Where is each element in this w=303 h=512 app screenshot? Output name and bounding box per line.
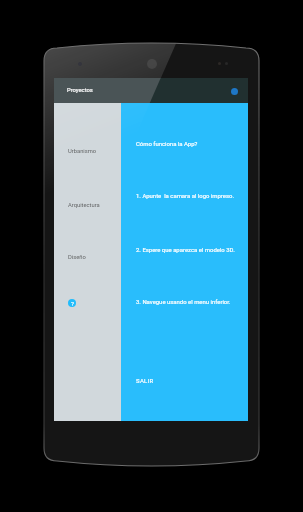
staticText: Proyectos	[67, 87, 93, 94]
staticText: Arquitectura	[68, 202, 100, 209]
staticText: 1. Apunte la camara al logo impreso.	[136, 192, 234, 199]
staticText: Cómo funciona la App?	[136, 140, 198, 147]
staticText: 3. Navegue usando el menu inferior.	[136, 298, 231, 305]
button[interactable]: Diseño	[54, 254, 121, 261]
button[interactable]: Urbanismo	[54, 148, 121, 155]
staticText: 2. Espere que aparezca el modelo 3D.	[136, 246, 235, 253]
staticText: ?	[71, 300, 74, 307]
staticText: Diseño	[68, 254, 86, 261]
button[interactable]: Help	[68, 299, 76, 307]
button[interactable]: Account	[231, 88, 238, 95]
staticText: SALIR	[136, 377, 154, 384]
button[interactable]: Arquitectura	[54, 202, 121, 209]
staticText: Urbanismo	[68, 148, 97, 155]
